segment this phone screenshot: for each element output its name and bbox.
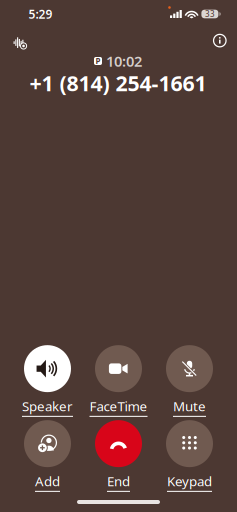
button[interactable]: Call Info xyxy=(209,30,231,52)
staticText: Add xyxy=(35,472,60,490)
staticText: Keypad xyxy=(167,472,212,490)
button[interactable]: Keypad xyxy=(166,420,213,492)
staticText: 33 xyxy=(205,9,215,19)
button[interactable]: Speaker xyxy=(22,345,73,417)
staticText: P xyxy=(95,56,100,66)
staticText: Mute xyxy=(173,397,206,415)
button[interactable]: End xyxy=(95,420,142,492)
staticText: 5:29 xyxy=(28,6,52,22)
staticText: 10:02 xyxy=(106,51,142,71)
button[interactable]: Mute xyxy=(166,345,213,417)
button[interactable]: Live Voicemail xyxy=(9,32,31,54)
staticText: FaceTime xyxy=(89,397,147,415)
staticText: +1 (814) 254-1661 xyxy=(29,69,206,97)
button[interactable]: FaceTime xyxy=(89,345,147,417)
staticText: Speaker xyxy=(22,397,73,415)
button[interactable]: Add xyxy=(24,420,71,492)
staticText: End xyxy=(107,472,130,490)
